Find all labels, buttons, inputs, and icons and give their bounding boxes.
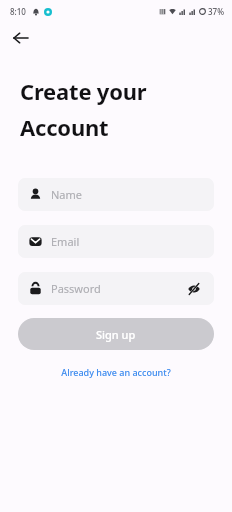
staticText: Name xyxy=(51,187,83,202)
button[interactable]: Name xyxy=(18,178,214,211)
button[interactable]: Password xyxy=(18,272,214,305)
staticText: Password xyxy=(51,281,101,296)
staticText: 37% xyxy=(208,6,224,17)
button[interactable]: Sign up xyxy=(18,318,214,350)
button[interactable]: Back xyxy=(6,23,36,53)
button[interactable]: Email xyxy=(18,225,214,258)
staticText: Already have an account? xyxy=(61,366,171,378)
button[interactable]: Already have an account? xyxy=(55,363,177,381)
staticText: 8:10 xyxy=(10,6,26,17)
staticText: Email xyxy=(51,234,80,249)
button[interactable]: Show password xyxy=(185,280,203,298)
staticText: Account xyxy=(20,112,109,142)
staticText: Sign up xyxy=(96,327,136,342)
staticText: Create your xyxy=(20,76,147,106)
